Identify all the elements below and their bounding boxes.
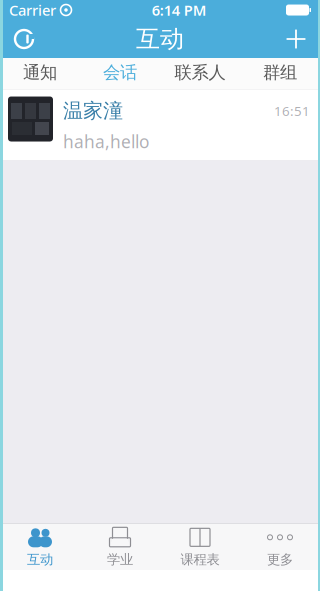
button[interactable]: 会话 [80, 58, 160, 89]
button[interactable]: 课程表 [160, 524, 240, 570]
staticText: Carrier [9, 0, 56, 20]
button[interactable]: 联系人 [160, 58, 240, 89]
button[interactable]: 群组 [240, 58, 320, 89]
staticText: 会话 [103, 62, 137, 83]
button[interactable]: Home [2, 20, 46, 58]
button[interactable]: 通知 [0, 58, 80, 89]
staticText: 学业 [107, 551, 133, 568]
staticText: haha,hello [63, 130, 149, 153]
staticText: 群组 [263, 62, 297, 83]
button[interactable]: 互动 [0, 524, 80, 570]
button[interactable]: 更多 [240, 524, 320, 570]
staticText: 联系人 [174, 62, 225, 83]
staticText [56, 0, 60, 20]
button[interactable]: Add [274, 20, 318, 58]
staticText: 课程表 [180, 551, 219, 568]
staticText: 16:51 [274, 102, 310, 120]
staticText: 温家潼 [63, 98, 123, 123]
staticText: 互动 [136, 24, 184, 54]
staticText: 6:14 PM [152, 0, 207, 20]
staticText: 通知 [23, 62, 57, 83]
button[interactable]: 温家潼 [0, 89, 320, 161]
button[interactable]: 学业 [80, 524, 160, 570]
staticText: 更多 [267, 551, 293, 568]
staticText: 互动 [27, 551, 53, 568]
